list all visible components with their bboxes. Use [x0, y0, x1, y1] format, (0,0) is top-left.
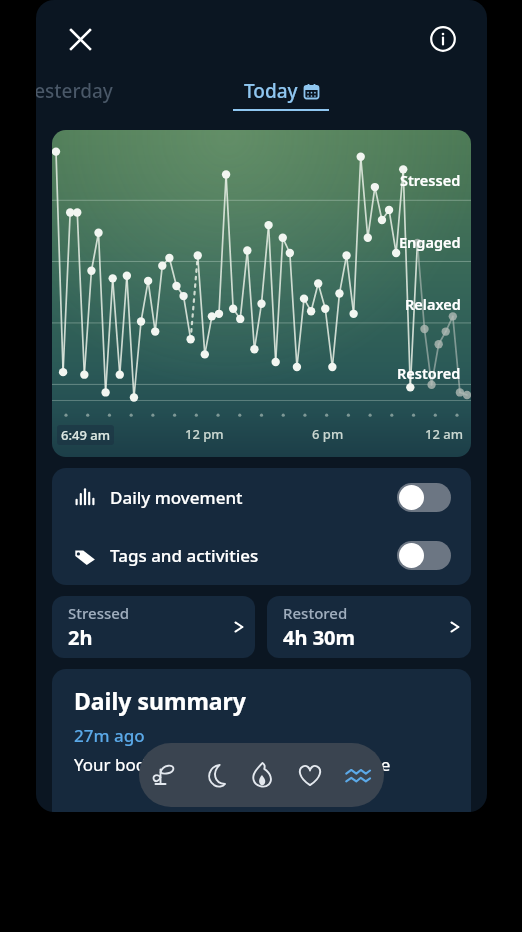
button[interactable]: Heart: [288, 747, 332, 803]
button[interactable]: Restored: [267, 596, 471, 658]
staticText: 6:49 am: [61, 426, 110, 444]
staticText: 27m ago: [74, 724, 145, 747]
staticText: Relaxed: [405, 294, 461, 314]
button[interactable]: Activity: [240, 747, 284, 803]
button[interactable]: Plant: [143, 747, 187, 803]
button[interactable]: Yesterday: [36, 78, 148, 118]
button[interactable]: Daily summary: [52, 669, 471, 812]
button[interactable]: Close: [58, 17, 102, 61]
staticText: Restored: [397, 363, 461, 383]
staticText: Stressed: [400, 170, 461, 190]
staticText: Daily summary: [74, 685, 246, 716]
button[interactable]: Stressed: [52, 596, 255, 658]
button[interactable]: Information: [421, 17, 465, 61]
button[interactable]: Sleep: [191, 747, 235, 803]
button[interactable]: Tags and activities: [52, 526, 471, 584]
staticText: Your body remains in a restorative zone: [74, 753, 391, 776]
staticText: Restored: [283, 603, 348, 623]
button[interactable]: Toggle Daily movement: [397, 483, 451, 512]
button[interactable]: Toggle Tags and activities: [397, 541, 451, 570]
staticText: Engaged: [399, 232, 461, 252]
staticText: 2h: [68, 624, 93, 651]
staticText: Tags and activities: [110, 544, 259, 567]
button[interactable]: Daily movement: [52, 468, 471, 526]
staticText: 12 am: [425, 425, 463, 443]
staticText: Yesterday: [36, 78, 113, 104]
button[interactable]: Stress: [336, 747, 380, 803]
staticText: 4h 30m: [283, 624, 356, 651]
staticText: Today: [244, 78, 298, 104]
button[interactable]: Today: [231, 78, 331, 111]
staticText: 12 pm: [185, 425, 224, 443]
button[interactable]: Stressed: [52, 130, 471, 457]
staticText: Stressed: [68, 603, 130, 623]
staticText: 6 pm: [312, 425, 344, 443]
staticText: Daily movement: [110, 486, 243, 509]
